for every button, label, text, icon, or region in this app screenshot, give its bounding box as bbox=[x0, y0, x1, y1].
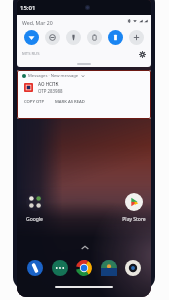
staticText: COPY OTP bbox=[24, 99, 45, 105]
button[interactable]: Wi-Fi bbox=[24, 30, 39, 45]
staticText: Play Store bbox=[122, 216, 146, 223]
staticText: MARK AS READ bbox=[55, 99, 85, 105]
button[interactable]: Photos bbox=[101, 260, 117, 276]
button[interactable]: Messages bbox=[52, 260, 68, 276]
button[interactable]: Open app drawer bbox=[79, 242, 91, 254]
button[interactable]: Auto rotate bbox=[108, 30, 123, 45]
button[interactable]: Flashlight bbox=[66, 30, 81, 45]
staticText: Wed, Mar 20 bbox=[22, 19, 53, 26]
button[interactable]: Chrome bbox=[76, 260, 92, 276]
button[interactable]: Do not disturb bbox=[45, 30, 60, 45]
button[interactable]: Camera bbox=[125, 260, 141, 276]
button[interactable]: Google bbox=[18, 193, 51, 223]
button[interactable]: MARK AS READ bbox=[54, 98, 86, 106]
staticText: Messages · New message bbox=[28, 73, 79, 79]
button[interactable]: Play Store bbox=[117, 193, 150, 223]
staticText: Google bbox=[26, 216, 43, 223]
button[interactable]: Edit tiles bbox=[129, 30, 144, 45]
staticText: 15:01 bbox=[20, 4, 36, 12]
button[interactable]: Battery saver bbox=[87, 30, 102, 45]
staticText: OTP 283988 bbox=[38, 88, 63, 94]
staticText: MTS RUS bbox=[22, 51, 40, 57]
button[interactable]: Settings bbox=[139, 51, 146, 58]
button[interactable]: Phone bbox=[27, 260, 43, 276]
button[interactable]: COPY OTP bbox=[23, 98, 46, 106]
staticText: АО НСПК bbox=[38, 81, 59, 87]
